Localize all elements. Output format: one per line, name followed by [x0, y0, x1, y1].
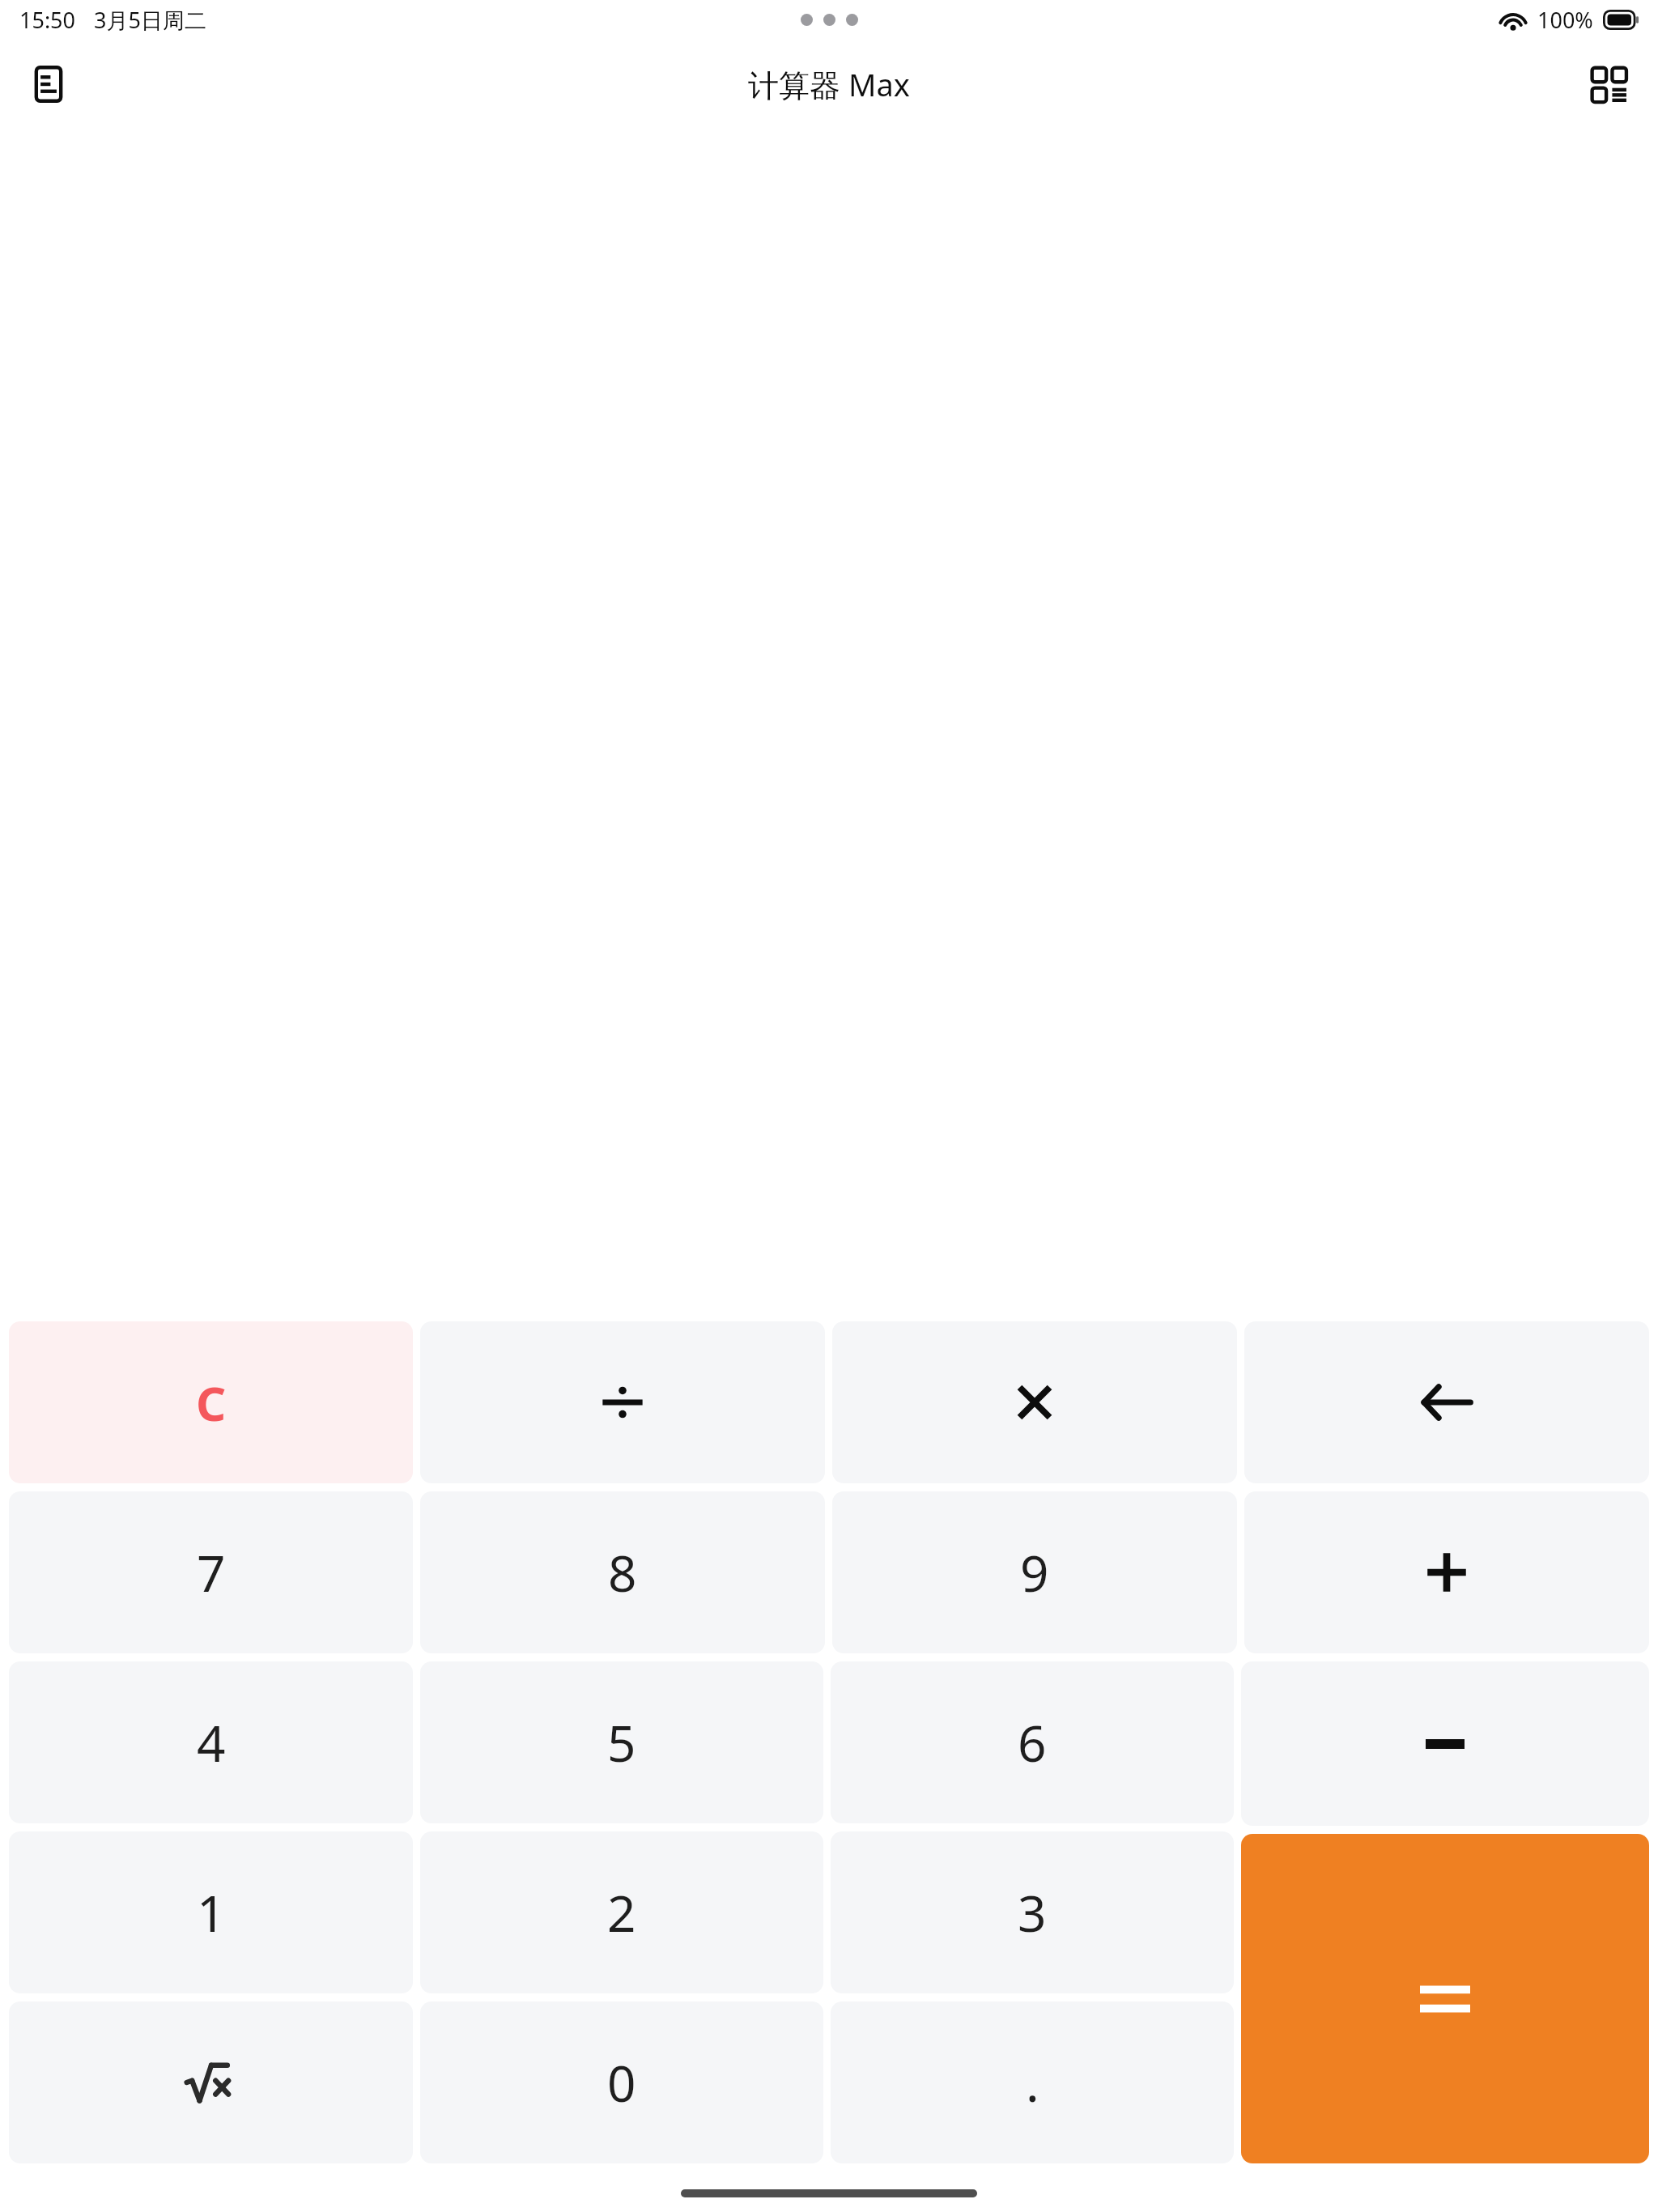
button[interactable]: Clear — [9, 1321, 413, 1483]
staticText: 15:50 — [19, 5, 76, 35]
other: Add — [1425, 1551, 1469, 1594]
other: Square root — [185, 2060, 238, 2105]
staticText: 4 — [197, 1708, 226, 1776]
other: Backspace — [1418, 1381, 1475, 1423]
button[interactable]: 2 — [420, 1831, 823, 1993]
staticText: 5 — [607, 1708, 636, 1776]
button[interactable]: Backspace — [1244, 1321, 1649, 1483]
button[interactable]: Layout options — [1574, 49, 1645, 120]
button[interactable]: 3 — [831, 1831, 1234, 1993]
button[interactable]: 5 — [420, 1661, 823, 1823]
button[interactable]: Divide — [420, 1321, 825, 1483]
staticText: 3 — [1018, 1878, 1047, 1946]
button[interactable]: Equals — [1241, 1834, 1649, 2163]
button[interactable]: 0 — [420, 2001, 823, 2163]
other: Divide — [600, 1380, 645, 1425]
button[interactable]: Add — [1244, 1491, 1649, 1653]
staticText: 7 — [197, 1538, 226, 1606]
button[interactable]: . — [831, 2001, 1234, 2163]
button[interactable]: 8 — [420, 1491, 825, 1653]
staticText: 1 — [197, 1878, 226, 1946]
staticText: . — [1026, 2048, 1039, 2116]
staticText: 8 — [608, 1538, 637, 1606]
staticText: 9 — [1020, 1538, 1049, 1606]
button[interactable]: 6 — [831, 1661, 1234, 1823]
button[interactable]: Square root — [9, 2001, 413, 2163]
other: Subtract — [1426, 1739, 1465, 1749]
other: Multiply — [1014, 1382, 1055, 1423]
button[interactable]: 9 — [832, 1491, 1237, 1653]
button[interactable]: Multiply — [832, 1321, 1237, 1483]
staticText: 2 — [607, 1878, 636, 1946]
staticText: 0 — [607, 2048, 636, 2116]
button[interactable]: 1 — [9, 1831, 413, 1993]
staticText: 计算器 Max — [748, 63, 910, 105]
button[interactable]: Subtract — [1241, 1661, 1649, 1826]
button[interactable]: 7 — [9, 1491, 413, 1653]
staticText: C — [196, 1371, 227, 1435]
staticText: 3月5日周二 — [94, 5, 206, 35]
button[interactable]: History — [13, 49, 84, 120]
staticText: 100% — [1537, 5, 1593, 35]
staticText: 6 — [1018, 1708, 1047, 1776]
button[interactable]: 4 — [9, 1661, 413, 1823]
